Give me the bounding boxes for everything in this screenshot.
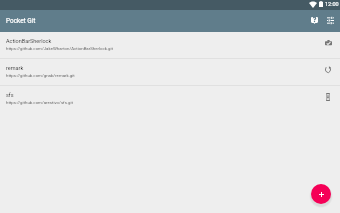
button[interactable]: Repository action <box>319 88 337 106</box>
staticText: ActionBarSherlock <box>6 38 52 44</box>
staticText: 12:00 <box>325 1 339 7</box>
button[interactable]: Help <box>307 13 322 28</box>
staticText: https://github.com/gnab/remark.git <box>6 73 75 78</box>
button[interactable]: Add repository <box>311 184 331 204</box>
staticText: sfs <box>6 92 14 98</box>
button[interactable]: ActionBarSherlock <box>0 32 340 58</box>
button[interactable]: Repository action <box>319 61 337 79</box>
staticText: Pocket Git <box>6 17 36 25</box>
button[interactable]: sfs <box>0 86 340 112</box>
staticText: https://github.com/arestivo/sfs.git <box>6 100 73 105</box>
staticText: https://github.com/JakeWharton/ActionBar… <box>6 46 113 51</box>
staticText: remark <box>6 65 24 71</box>
button[interactable]: Repository action <box>319 34 337 52</box>
button[interactable]: remark <box>0 59 340 85</box>
button[interactable]: Settings <box>323 13 338 28</box>
